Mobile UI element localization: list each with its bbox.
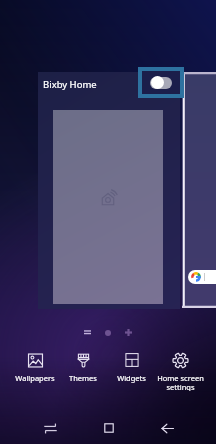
button[interactable]: Bixby Home on/off [142, 71, 180, 94]
staticText: Bixby Home [43, 78, 97, 91]
button[interactable]: Home page [105, 330, 111, 336]
button[interactable]: Home [80, 412, 138, 444]
button[interactable]: Google search [182, 72, 216, 308]
button[interactable]: Wallpapers [11, 351, 59, 383]
button[interactable]: Bixby Home page [84, 329, 91, 336]
button[interactable]: Home screen settings [156, 351, 205, 391]
button[interactable]: Themes [59, 351, 107, 383]
staticText: Wallpapers [15, 373, 55, 383]
button[interactable]: Back [138, 412, 196, 444]
button[interactable]: Widgets [107, 351, 156, 383]
staticText: Widgets [117, 373, 146, 383]
staticText: Themes [69, 373, 97, 383]
staticText: Home screen settings [157, 373, 204, 391]
button[interactable]: Google search [188, 270, 216, 284]
button[interactable]: Bixby Home [38, 72, 180, 309]
button[interactable]: Recents [21, 412, 80, 444]
button[interactable]: Add page [125, 329, 132, 336]
